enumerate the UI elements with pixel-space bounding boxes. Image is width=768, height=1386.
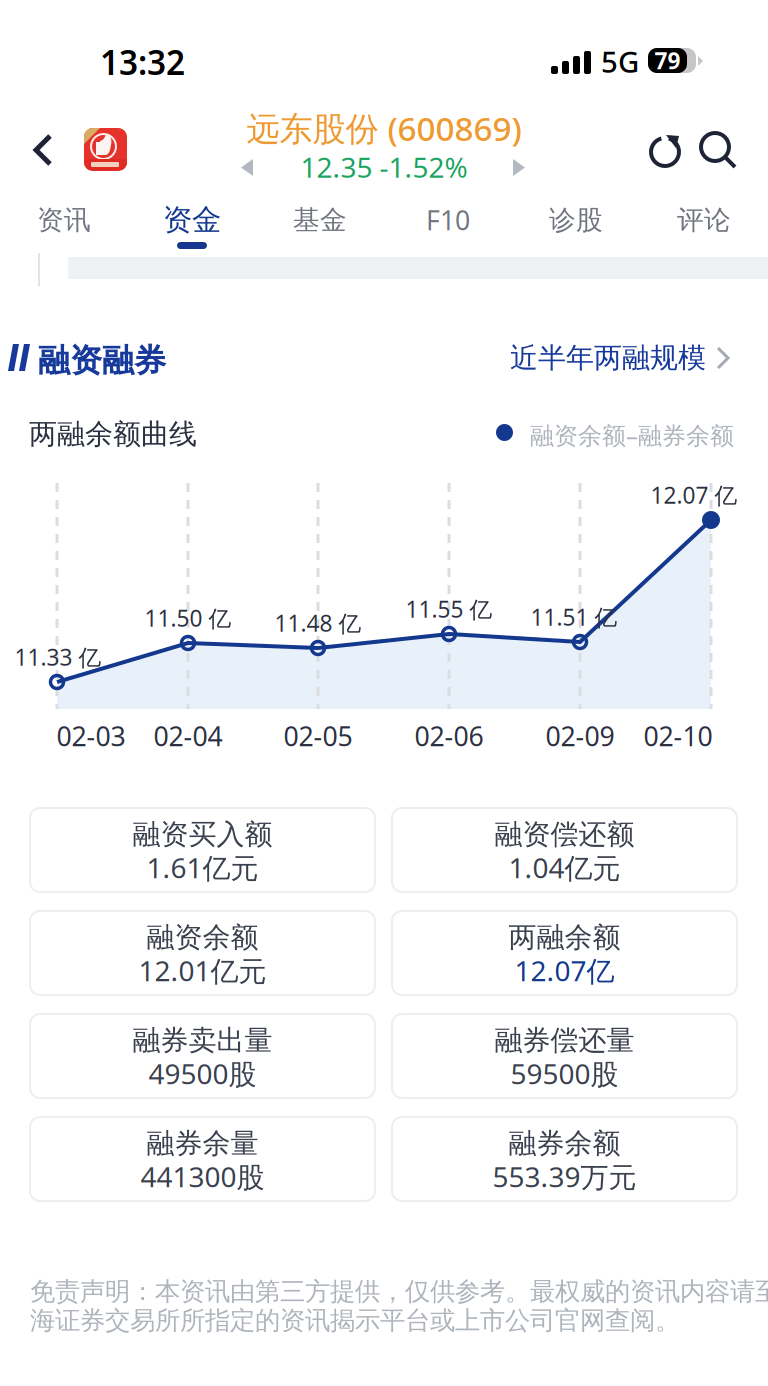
- staticText: 12.07 亿: [650, 480, 737, 510]
- staticText: 02-04: [153, 718, 222, 754]
- staticText: 免责声明：本资讯由第三方提供，仅供参考。最权威的资讯内容请至: [30, 1276, 768, 1307]
- button[interactable]: Search: [688, 120, 744, 176]
- staticText: 评论: [677, 204, 731, 236]
- button[interactable]: 融券余量: [30, 1117, 375, 1201]
- staticText: 59500股: [510, 1055, 618, 1092]
- staticText: 融资融券: [38, 341, 166, 380]
- staticText: 资金: [163, 202, 221, 238]
- button[interactable]: 基金: [256, 194, 384, 254]
- staticText: 海证券交易所所指定的资讯揭示平台或上市公司官网查阅。: [30, 1305, 680, 1336]
- staticText: 441300股: [140, 1158, 264, 1195]
- staticText: 79: [654, 45, 680, 75]
- button[interactable]: 两融余额: [392, 911, 737, 995]
- staticText: 两融余额: [508, 920, 620, 955]
- button[interactable]: 诊股: [512, 194, 640, 254]
- staticText: 诊股: [549, 204, 603, 236]
- staticText: 553.39万元: [492, 1158, 636, 1195]
- button[interactable]: 融资余额: [30, 911, 375, 995]
- staticText: 远东股份 (600869): [246, 106, 521, 150]
- staticText: 12.01亿元: [138, 952, 266, 989]
- button[interactable]: 融券偿还量: [392, 1014, 737, 1098]
- staticText: 1.61亿元: [146, 849, 258, 886]
- staticText: F10: [426, 202, 470, 238]
- staticText: 11.48 亿: [274, 608, 361, 638]
- button[interactable]: 资金: [128, 194, 256, 254]
- staticText: 融资买入额: [132, 817, 272, 852]
- staticText: 11.51 亿: [530, 602, 617, 632]
- button[interactable]: F10: [384, 194, 512, 254]
- staticText: 融资偿还额: [494, 817, 634, 852]
- staticText: 11.50 亿: [144, 603, 231, 633]
- staticText: 融券偿还量: [494, 1023, 634, 1058]
- staticText: 02-03: [56, 718, 125, 754]
- staticText: 两融余额曲线: [29, 417, 197, 451]
- staticText: 11.55 亿: [405, 594, 492, 624]
- staticText: 11.33 亿: [14, 642, 101, 672]
- staticText: 资讯: [37, 204, 91, 236]
- staticText: 近半年两融规模: [510, 341, 706, 375]
- staticText: 1.04亿元: [508, 849, 620, 886]
- button[interactable]: 融券卖出量: [30, 1014, 375, 1098]
- staticText: 融券卖出量: [132, 1023, 272, 1058]
- button[interactable]: 资讯: [0, 194, 128, 254]
- staticText: 02-09: [545, 718, 614, 754]
- staticText: 融资余额: [146, 920, 258, 955]
- button[interactable]: 融资买入额: [30, 808, 375, 892]
- button[interactable]: 融资偿还额: [392, 808, 737, 892]
- staticText: 12.07亿: [514, 952, 614, 989]
- staticText: 融券余量: [146, 1126, 258, 1161]
- staticText: 02-06: [414, 718, 483, 754]
- button[interactable]: 评论: [640, 194, 768, 254]
- button[interactable]: Refresh: [637, 122, 693, 178]
- button[interactable]: 近半年两融规模: [510, 334, 732, 382]
- staticText: 02-10: [643, 718, 712, 754]
- staticText: 融资余额–融券余额: [530, 419, 734, 451]
- button[interactable]: Back: [11, 113, 75, 187]
- staticText: 5G: [601, 42, 639, 81]
- button[interactable]: 融券余额: [392, 1117, 737, 1201]
- staticText: 13:32: [100, 40, 185, 84]
- staticText: 49500股: [148, 1055, 256, 1092]
- staticText: 融券余额: [508, 1126, 620, 1161]
- staticText: 02-05: [283, 718, 352, 754]
- staticText: 基金: [293, 204, 347, 236]
- staticText: 12.35 -1.52%: [300, 148, 467, 186]
